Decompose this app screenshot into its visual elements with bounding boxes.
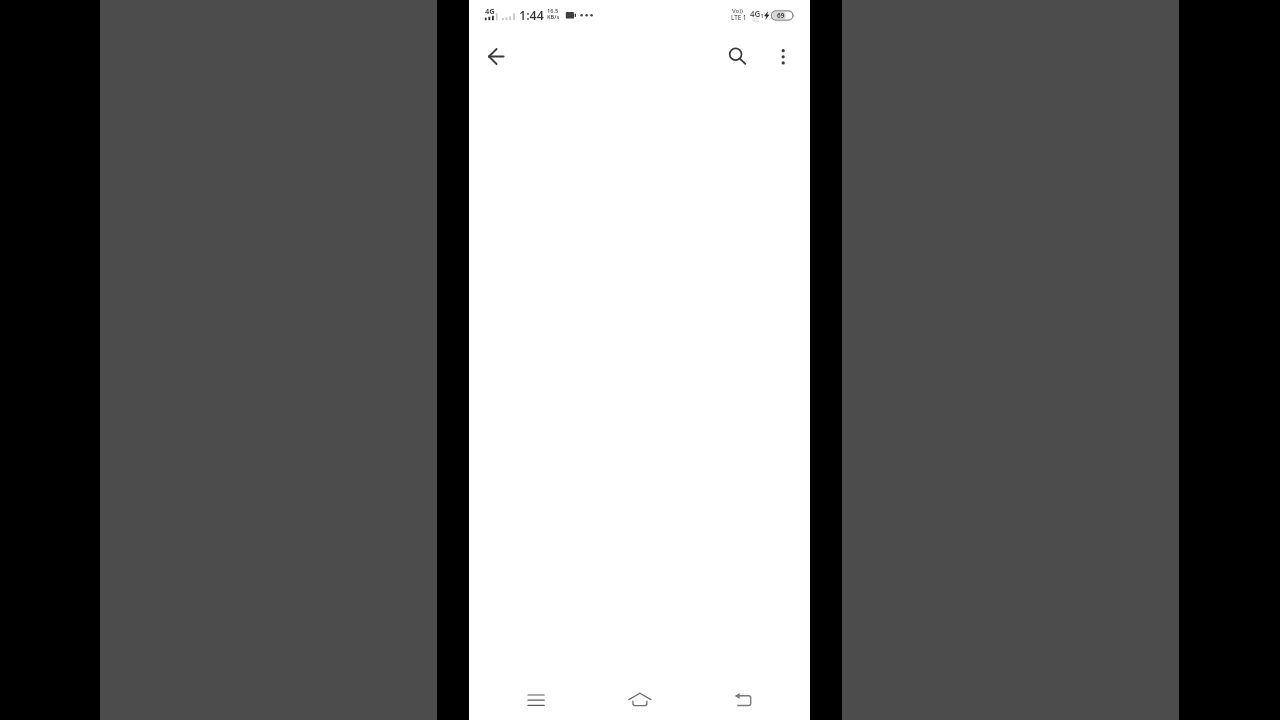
staticText: 69 <box>777 11 785 20</box>
button[interactable] <box>721 39 751 69</box>
button[interactable] <box>769 41 797 71</box>
button[interactable] <box>620 684 660 718</box>
button[interactable] <box>481 41 512 72</box>
staticText: LTE 1 <box>731 13 747 21</box>
staticText: 4G <box>752 16 760 23</box>
staticText: KB/s <box>547 13 560 21</box>
staticText: 4G <box>485 6 495 16</box>
staticText: 16.5 <box>547 7 559 15</box>
staticText: Vo)) <box>732 7 743 15</box>
button[interactable] <box>724 684 764 718</box>
button[interactable] <box>516 684 556 718</box>
staticText: 1:44 <box>519 7 544 24</box>
staticText: 4G₁ <box>750 8 764 19</box>
